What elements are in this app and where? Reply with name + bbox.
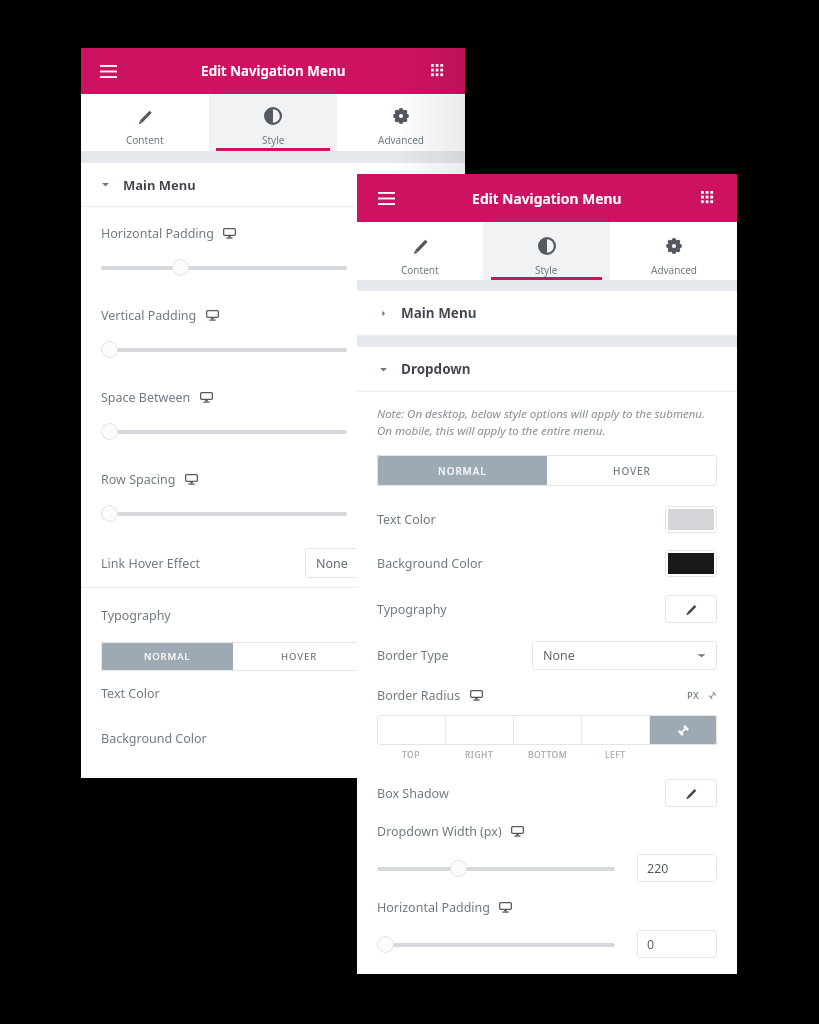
staticText: 0: [647, 936, 655, 953]
button[interactable]: [582, 715, 649, 745]
button[interactable]: Slider handle: [377, 936, 394, 953]
button[interactable]: Slider handle: [101, 505, 118, 522]
staticText: NORMAL: [438, 464, 487, 478]
staticText: Horizontal Padding: [377, 899, 490, 916]
button[interactable]: Widgets panel: [425, 58, 451, 84]
button[interactable]: Slider handle: [101, 423, 118, 440]
button[interactable]: 220: [637, 854, 717, 882]
button[interactable]: HOVER: [547, 455, 717, 486]
staticText: None: [543, 647, 575, 664]
staticText: HOVER: [613, 464, 651, 478]
staticText: BOTTOM: [528, 749, 567, 761]
button[interactable]: Content: [357, 222, 483, 280]
staticText: Border Type: [377, 647, 449, 664]
staticText: Content: [126, 133, 164, 147]
staticText: Typography: [377, 601, 447, 618]
staticText: Advanced: [651, 263, 697, 277]
button[interactable]: [377, 715, 445, 745]
button[interactable]: [446, 715, 513, 745]
staticText: Space Between: [101, 389, 191, 406]
staticText: Border Radius: [377, 687, 461, 704]
staticText: RIGHT: [465, 749, 494, 761]
staticText: Note: On desktop, below style options wi…: [377, 406, 717, 438]
staticText: Dropdown: [401, 360, 471, 378]
button[interactable]: Content: [81, 94, 209, 151]
staticText: 220: [647, 860, 669, 877]
staticText: Typography: [101, 607, 171, 624]
button[interactable]: Link values: [650, 715, 717, 745]
staticText: Dropdown Width (px): [377, 823, 502, 840]
staticText: Background Color: [377, 555, 483, 572]
staticText: Horizontal Padding: [101, 225, 214, 242]
button[interactable]: None: [305, 548, 445, 578]
staticText: Main Menu: [123, 176, 196, 194]
button[interactable]: Style: [209, 94, 337, 151]
button[interactable]: Edit: [665, 779, 717, 807]
staticText: NORMAL: [144, 650, 191, 663]
button[interactable]: Slider handle: [450, 860, 467, 877]
staticText: PX: [687, 689, 700, 702]
staticText: Edit Navigation Menu: [472, 189, 622, 208]
staticText: Style: [535, 263, 558, 277]
button[interactable]: Slider handle: [101, 341, 118, 358]
staticText: Background Color: [101, 730, 207, 747]
button[interactable]: [514, 715, 581, 745]
staticText: Edit Navigation Menu: [201, 62, 346, 80]
button[interactable]: NORMAL: [101, 642, 233, 671]
staticText: Style: [262, 133, 285, 147]
button[interactable]: Menu: [373, 185, 399, 211]
button[interactable]: Advanced: [610, 222, 737, 280]
staticText: Box Shadow: [377, 785, 449, 802]
button[interactable]: Dropdown: [357, 347, 737, 391]
button[interactable]: HOVER: [233, 642, 366, 671]
button[interactable]: Menu: [95, 58, 121, 84]
button[interactable]: Edit: [665, 595, 717, 623]
button[interactable]: Units: [708, 691, 717, 700]
staticText: LEFT: [605, 749, 626, 761]
staticText: TOP: [402, 749, 420, 761]
button[interactable]: NORMAL: [377, 455, 547, 486]
staticText: None: [316, 555, 348, 572]
staticText: Vertical Padding: [101, 307, 197, 324]
button[interactable]: Advanced: [337, 94, 465, 151]
button[interactable]: 0: [637, 930, 717, 958]
button[interactable]: Widgets panel: [695, 185, 721, 211]
button[interactable]: Main Menu: [81, 163, 465, 206]
staticText: HOVER: [281, 650, 318, 663]
staticText: Text Color: [377, 511, 436, 528]
staticText: Row Spacing: [101, 471, 176, 488]
button[interactable]: Style: [483, 222, 610, 280]
button[interactable]: Slider handle: [172, 259, 189, 276]
button[interactable]: Main Menu: [357, 291, 737, 335]
staticText: Text Color: [101, 685, 160, 702]
staticText: Main Menu: [401, 304, 477, 322]
staticText: Link Hover Effect: [101, 555, 200, 572]
button[interactable]: None: [532, 641, 717, 670]
staticText: Advanced: [378, 133, 424, 147]
staticText: Content: [401, 263, 439, 277]
